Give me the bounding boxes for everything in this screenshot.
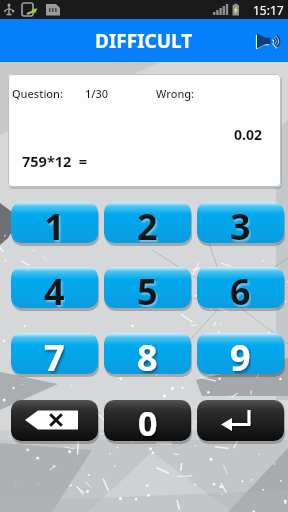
staticText: Wrong: [156,86,195,101]
staticText: 7 [44,333,65,374]
staticText: 0.02 [234,125,262,144]
staticText: 2 [137,202,158,243]
button[interactable] [197,400,284,441]
button[interactable]: 0 [104,400,191,441]
staticText: 8 [137,333,158,374]
button[interactable]: 2 [104,202,191,243]
staticText: DIFFICULT [95,28,193,54]
button[interactable]: 7 [11,333,98,374]
staticText: 3 [230,202,251,243]
staticText: 1/30 [85,86,109,101]
staticText: 4 [44,267,65,308]
staticText: 9 [230,333,251,374]
button[interactable]: 9 [197,333,284,374]
button[interactable] [11,400,98,441]
button[interactable]: 6 [197,267,284,308]
button[interactable]: 4 [11,267,98,308]
staticText: Question: [12,86,63,101]
staticText: 759*12 = [22,151,88,171]
button[interactable] [252,26,282,56]
staticText: 5 [137,267,158,308]
button[interactable]: 5 [104,267,191,308]
staticText: 0 [138,400,158,441]
staticText: 1 [44,202,65,243]
button[interactable]: 3 [197,202,284,243]
button[interactable]: 8 [104,333,191,374]
staticText: 15:17 [253,2,284,18]
button[interactable]: 1 [11,202,98,243]
staticText: 6 [230,267,251,308]
